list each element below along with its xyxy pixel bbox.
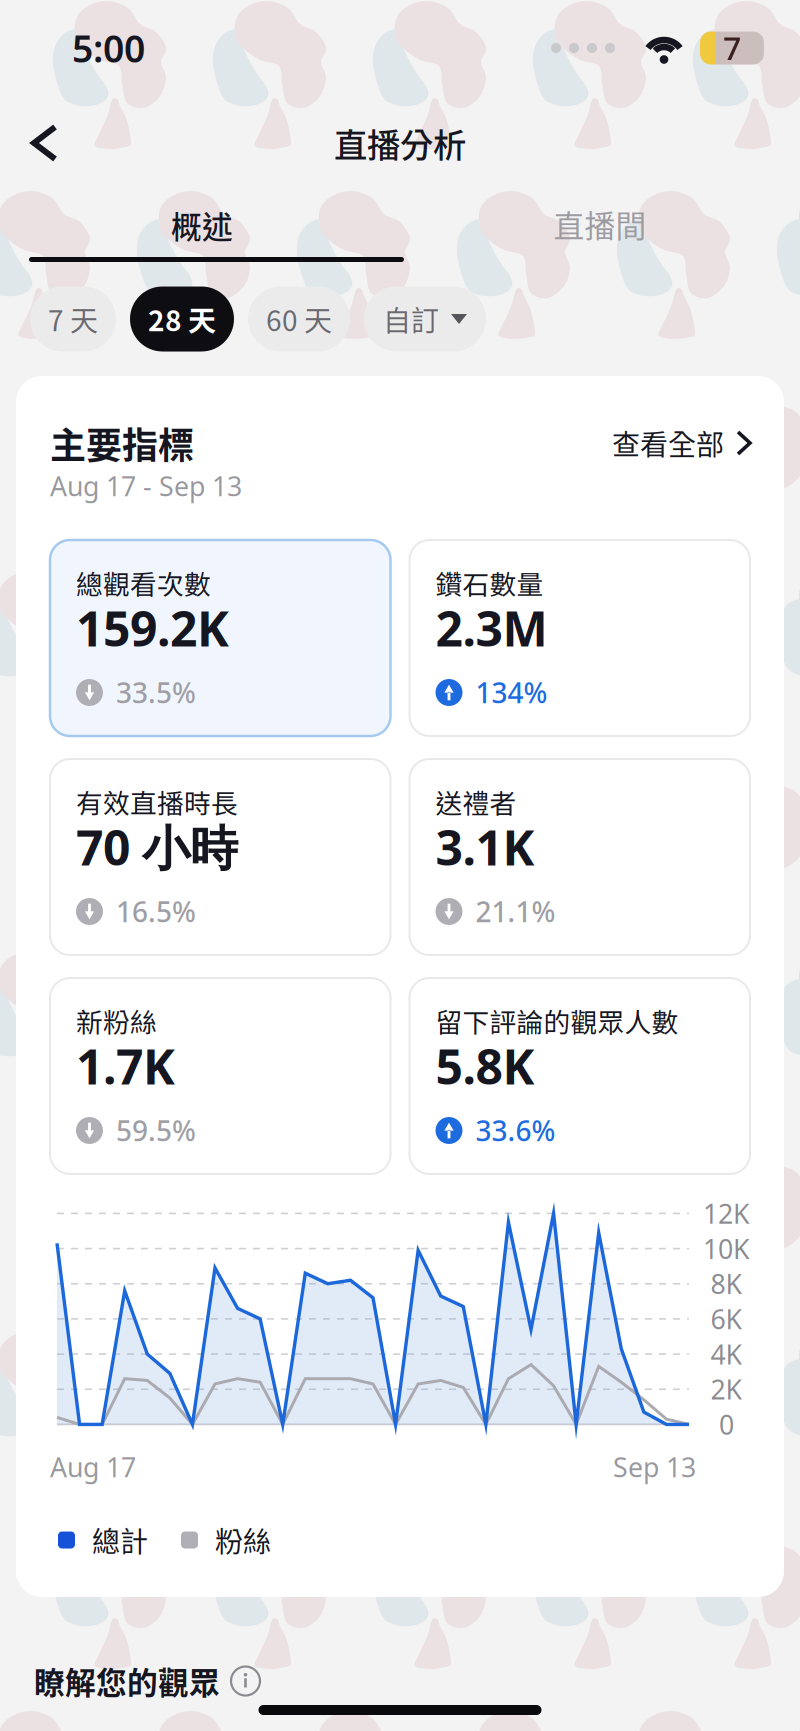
staticText: 有效直播時長 [76,782,238,821]
staticText: 60 天 [266,299,332,339]
staticText: 10K [703,1231,750,1266]
staticText: 1.7K [76,1034,175,1098]
button[interactable]: 鑽石數量 [409,540,750,736]
button[interactable]: 60 天 [248,286,350,351]
staticText: 送禮者 [435,782,516,821]
staticText: 33.5% [116,674,196,711]
staticText: 粉絲 [215,1520,271,1560]
button[interactable]: 查看全部 [612,423,750,463]
staticText: 8K [710,1266,742,1301]
button[interactable]: 直播間 [400,190,800,262]
staticText: 7 天 [48,299,98,339]
button[interactable]: 新粉絲 [50,978,390,1174]
button[interactable]: 留下評論的觀眾人數 [409,978,750,1174]
staticText: 總計 [92,1520,148,1560]
staticText: Aug 17 - Sep 13 [50,468,242,504]
staticText: Aug 17 [50,1449,136,1485]
staticText: 5.8K [435,1034,534,1098]
staticText: 3.1K [435,815,534,879]
staticText: 主要指標 [50,417,194,469]
staticText: 鑽石數量 [435,563,543,602]
staticText: 概述 [171,203,233,247]
button[interactable]: 28 天 [130,286,234,351]
button[interactable]: 7 天 [30,286,116,351]
staticText: 留下評論的觀眾人數 [435,1001,678,1040]
staticText: 0 [719,1407,734,1442]
staticText: 59.5% [116,1112,196,1149]
staticText: 瞭解您的觀眾 [34,1659,220,1703]
button[interactable]: Back [12,107,77,179]
staticText: 159.2K [76,596,229,660]
staticText: 12K [703,1196,750,1231]
button[interactable]: 自訂 [364,286,486,351]
button[interactable]: 有效直播時長 [50,759,390,955]
staticText: 直播間 [553,202,646,246]
staticText: 4K [710,1336,742,1372]
staticText: 自訂 [383,299,439,339]
staticText: 新粉絲 [76,1001,157,1040]
staticText: 33.6% [475,1112,555,1149]
staticText: 16.5% [116,893,196,930]
staticText: 2K [710,1371,742,1407]
staticText: 6K [710,1301,742,1337]
button[interactable]: 概述 [0,190,400,262]
staticText: 21.1% [475,893,555,930]
staticText: 134% [475,674,547,711]
staticText: 5:00 [72,23,145,73]
staticText: 28 天 [148,299,216,339]
button[interactable]: 送禮者 [409,759,750,955]
staticText: 2.3M [435,596,547,660]
staticText: 查看全部 [612,423,724,463]
staticText: 70 小時 [76,815,238,879]
staticText: 直播分析 [334,119,466,167]
staticText: 總觀看次數 [76,563,211,602]
staticText: Sep 13 [613,1449,696,1485]
button[interactable]: 總觀看次數 [50,540,390,736]
staticText: 7 [723,27,741,69]
